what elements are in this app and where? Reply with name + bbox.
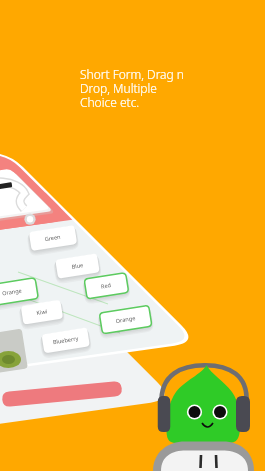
staticText: Short Form, Drag n Drop, Multiple Choice…: [80, 66, 185, 111]
